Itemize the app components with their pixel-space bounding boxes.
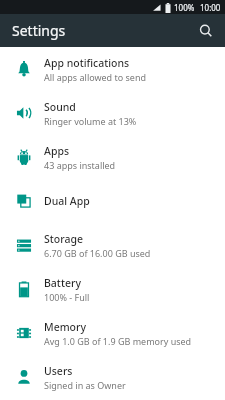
staticText: 100% - Full [44, 291, 90, 303]
button[interactable]: Memory [0, 311, 225, 355]
staticText: Avg 1.0 GB of 1.9 GB memory used [44, 335, 192, 347]
staticText: 100% [174, 2, 195, 13]
staticText: Sound [44, 100, 76, 114]
staticText: Apps [44, 144, 70, 158]
staticText: Battery [44, 276, 81, 290]
staticText: Storage [44, 232, 83, 246]
staticText: 10:00 [200, 2, 221, 13]
staticText: All apps allowed to send [44, 71, 147, 83]
staticText: Settings [12, 21, 66, 40]
button[interactable]: Battery [0, 267, 225, 311]
staticText: Ringer volume at 13% [44, 115, 137, 127]
button[interactable]: App notifications [0, 47, 225, 91]
button[interactable]: Sound [0, 91, 225, 135]
staticText: Signed in as Owner [44, 379, 126, 391]
staticText: 6.70 GB of 16.00 GB used [44, 247, 151, 259]
staticText: Users [44, 364, 73, 378]
button[interactable]: Storage [0, 223, 225, 267]
staticText: 43 apps installed [44, 159, 116, 171]
staticText: Dual App [44, 194, 90, 208]
button[interactable]: Dual App [0, 179, 225, 223]
staticText: Memory [44, 320, 87, 334]
button[interactable]: Search [193, 18, 219, 44]
button[interactable]: Users [0, 355, 225, 399]
button[interactable]: Apps [0, 135, 225, 179]
staticText: App notifications [44, 56, 130, 70]
